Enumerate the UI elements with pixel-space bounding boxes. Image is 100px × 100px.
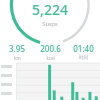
button[interactable]: Step goal ring (0, 0, 100, 44)
staticText: 3.95 (9, 43, 25, 54)
button[interactable]: Activity chart (0, 63, 100, 100)
staticText: 5,224 (32, 0, 68, 19)
staticText: kcal (46, 55, 55, 61)
button[interactable]: 3.95 (0, 43, 34, 61)
staticText: 时间 (79, 55, 88, 61)
button[interactable]: 01:40 (67, 43, 100, 61)
staticText: Steps (42, 20, 58, 28)
staticText: 01:40 (73, 43, 94, 54)
button[interactable]: 200.6 (34, 43, 67, 61)
staticText: 200.6 (40, 43, 61, 54)
staticText: km (14, 55, 21, 61)
